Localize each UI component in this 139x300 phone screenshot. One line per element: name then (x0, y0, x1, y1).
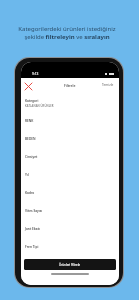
button[interactable]: BEDEN (21, 130, 119, 148)
staticText: KATLANAN ÜRÜNLER (25, 104, 54, 108)
staticText: BEDEN (25, 137, 36, 141)
button[interactable]: RENK (21, 112, 119, 130)
staticText: Cinsiyet (25, 155, 38, 159)
staticText: Kategorilerdeki ürünleri istediğiniz şek… (18, 25, 116, 41)
button[interactable]: Yıl (21, 166, 119, 184)
button[interactable]: Ürünleri Filtrele (24, 259, 116, 270)
staticText: Ürünleri Filtrele (59, 263, 81, 267)
staticText: Yıl (25, 173, 29, 177)
button[interactable]: Jant Ebatı (21, 220, 119, 238)
button[interactable]: Fren Tipi (21, 238, 119, 256)
button[interactable]: Temizle (102, 83, 119, 87)
button[interactable]: Kategori (21, 94, 119, 112)
button[interactable]: Kapat (23, 81, 34, 92)
staticText: Kategori (25, 99, 39, 103)
staticText: Jant Ebatı (25, 227, 40, 231)
staticText: 9:13 (32, 72, 39, 76)
button[interactable]: Vites Sayısı (21, 202, 119, 220)
staticText: RENK (25, 119, 34, 123)
staticText: Vites Sayısı (25, 209, 43, 213)
staticText: Filtrele (64, 83, 76, 88)
staticText: Fren Tipi (25, 245, 39, 249)
button[interactable]: Kadro (21, 184, 119, 202)
button[interactable]: Cinsiyet (21, 148, 119, 166)
staticText: Kadro (25, 191, 35, 195)
